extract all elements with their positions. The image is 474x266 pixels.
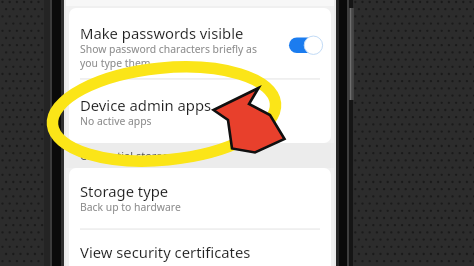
button[interactable]: Make passwords visible toggle [280,33,316,53]
staticText: Credential storage [80,148,176,163]
staticText: Storage type [80,181,169,201]
staticText: Back up to hardware [80,200,181,214]
staticText: Show password characters briefly as [80,42,257,56]
button[interactable] [66,168,334,220]
button[interactable] [66,78,334,142]
staticText: you type them. [80,56,154,70]
staticText: Make passwords visible [80,23,244,43]
button[interactable] [66,220,334,260]
staticText: No active apps [80,114,152,128]
button[interactable]: Make passwords visible toggle [66,8,334,78]
staticText: View security certificates [80,242,251,262]
staticText: Device admin apps [80,95,212,115]
